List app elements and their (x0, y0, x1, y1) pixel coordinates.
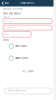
button[interactable]: Back (0, 0, 12, 6)
button[interactable]: Email address (3, 25, 52, 30)
staticText: Phone (4, 33, 9, 35)
staticText: Take a photo (15, 45, 27, 47)
staticText: Photos (3, 39, 9, 41)
button[interactable]: Phone (3, 32, 31, 37)
staticText: No, thanks (22, 70, 33, 73)
staticText: Enter your details (3, 12, 21, 15)
staticText: Upload a photo (15, 57, 28, 59)
staticText: Full name (3, 16, 9, 18)
staticText: Customer information (3, 8, 23, 10)
staticText: Order total information (8, 90, 26, 91)
staticText: Back (5, 2, 9, 4)
button[interactable]: Take a photo (9, 44, 37, 49)
staticText: Your name (4, 20, 13, 22)
button[interactable]: No, thanks (19, 70, 37, 74)
button[interactable]: Upload a photo (9, 56, 37, 61)
button[interactable]: Your name (3, 19, 52, 24)
staticText: Email address (4, 27, 15, 29)
staticText: ORDER DETAILS (20, 2, 34, 4)
